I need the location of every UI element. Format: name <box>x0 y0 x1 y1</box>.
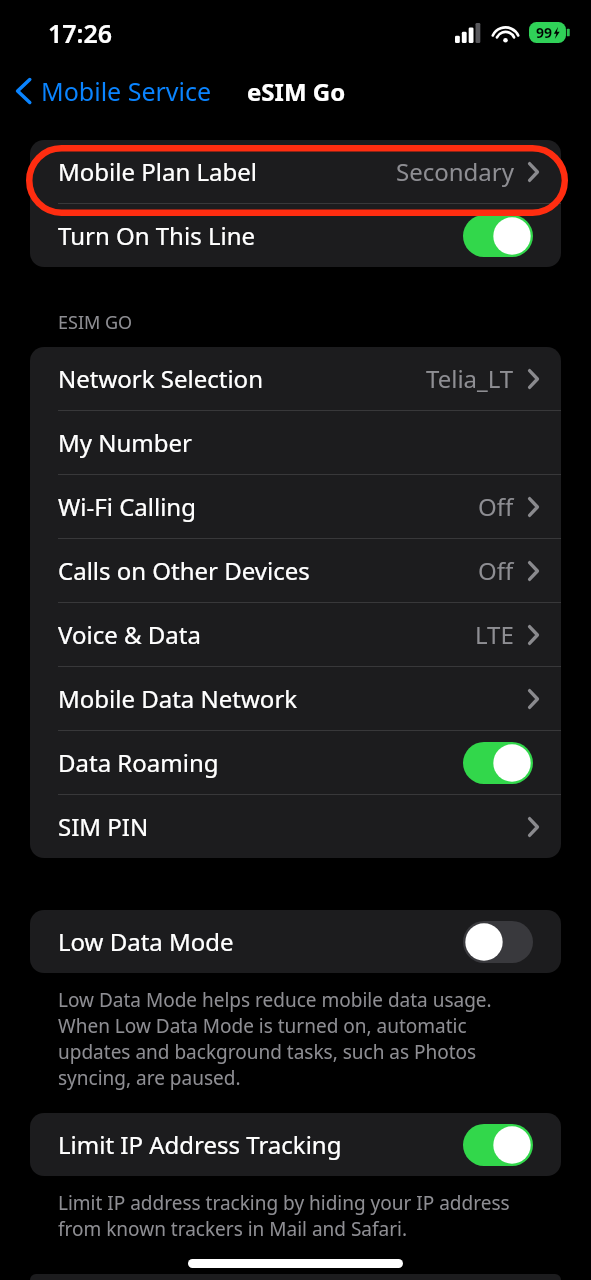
button[interactable]: On <box>463 742 533 784</box>
staticText: 99 <box>536 23 553 42</box>
button[interactable]: Mobile Data Network <box>30 667 561 730</box>
staticText: Mobile Plan Label <box>58 155 257 188</box>
staticText: My Number <box>58 426 192 459</box>
staticText: Voice & Data <box>58 618 201 651</box>
staticText: 17:26 <box>48 16 113 50</box>
button[interactable]: On <box>463 1124 533 1166</box>
staticText: Secondary <box>396 155 514 188</box>
staticText: Low Data Mode helps reduce mobile data u… <box>58 987 543 1091</box>
staticText: Calls on Other Devices <box>58 554 310 587</box>
staticText: Mobile Service <box>41 74 212 108</box>
staticText: Low Data Mode <box>58 925 234 958</box>
staticText: Telia_LT <box>426 362 514 395</box>
button[interactable]: SIM PIN <box>30 795 561 858</box>
staticText: ESIM GO <box>58 310 133 335</box>
staticText: Limit IP Address Tracking <box>58 1128 342 1161</box>
button[interactable]: Data Roaming <box>30 731 561 794</box>
staticText: Network Selection <box>58 362 263 395</box>
button[interactable]: Wi-Fi Calling <box>30 475 561 538</box>
button[interactable]: Network Selection <box>30 347 561 410</box>
staticText: Data Roaming <box>58 746 219 779</box>
button[interactable]: Off <box>463 921 533 963</box>
button[interactable]: Mobile Service <box>0 68 222 114</box>
staticText: Limit IP address tracking by hiding your… <box>58 1190 543 1242</box>
button[interactable]: Mobile Plan Label <box>30 140 561 203</box>
staticText: Mobile Data Network <box>58 682 298 715</box>
button[interactable]: Turn On This Line <box>30 204 561 267</box>
staticText: Off <box>478 490 514 523</box>
button[interactable]: Low Data Mode <box>30 910 561 973</box>
staticText: LTE <box>475 618 514 651</box>
staticText: Turn On This Line <box>58 219 256 252</box>
button[interactable]: Calls on Other Devices <box>30 539 561 602</box>
staticText: Off <box>478 554 514 587</box>
staticText: SIM PIN <box>58 810 149 843</box>
staticText: eSIM Go <box>247 75 346 108</box>
button[interactable]: Limit IP Address Tracking <box>30 1113 561 1176</box>
button[interactable]: Voice & Data <box>30 603 561 666</box>
button[interactable]: On <box>463 215 533 257</box>
staticText: Wi-Fi Calling <box>58 490 196 523</box>
button[interactable]: My Number <box>30 411 561 474</box>
